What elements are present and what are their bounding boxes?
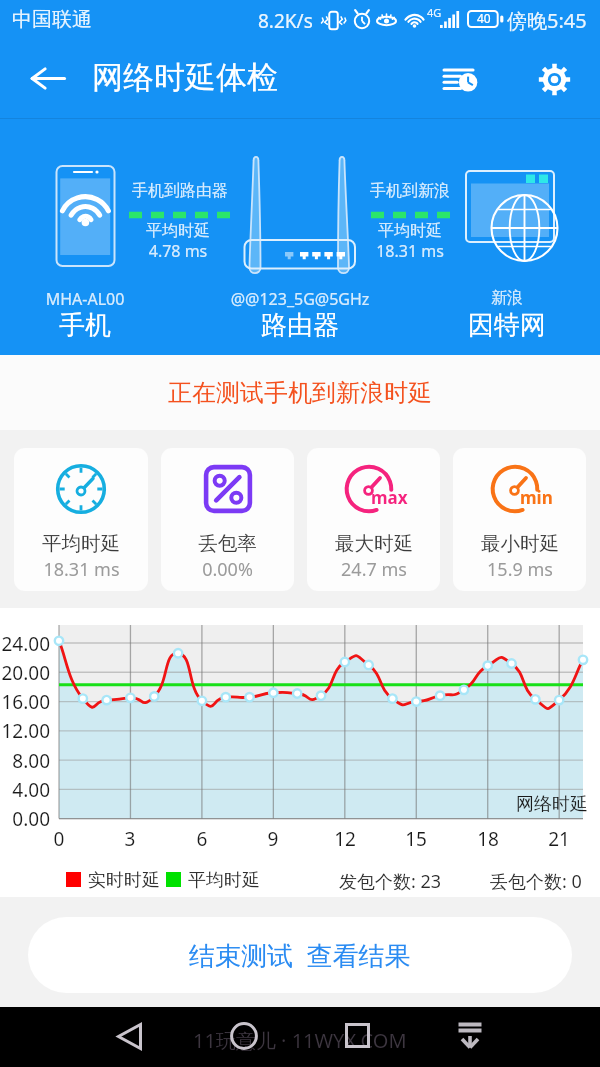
button[interactable]: Settings [524, 49, 584, 109]
staticText: 8.00 [0, 748, 50, 774]
button[interactable]: 丢包率 [161, 448, 294, 591]
staticText: 16.00 [0, 689, 50, 715]
button[interactable]: 平均时延 [14, 448, 148, 591]
staticText: 40 [477, 10, 491, 26]
staticText: 手机到新浪 [290, 181, 530, 201]
staticText: 24.00 [0, 631, 50, 657]
staticText: 4.78 ms [58, 240, 298, 262]
button[interactable]: Back [17, 48, 78, 109]
staticText: 6 [182, 826, 222, 852]
button[interactable]: Back [107, 1014, 151, 1058]
staticText: 9 [253, 826, 293, 852]
staticText: 路由器 [180, 309, 420, 342]
staticText: 18.31 ms [290, 240, 530, 262]
staticText: min [520, 486, 553, 509]
staticText: 丢包率 [198, 531, 257, 556]
staticText: 手机 [0, 309, 205, 342]
staticText: 结束测试 查看结果 [189, 937, 411, 973]
staticText: 15 [396, 826, 436, 852]
staticText: 12 [325, 826, 365, 852]
staticText: 15.9 ms [487, 557, 553, 582]
staticText: 因特网 [387, 309, 600, 342]
staticText: 8.2K/s [258, 8, 313, 34]
button[interactable]: Home [222, 1014, 266, 1058]
staticText: MHA-AL00 [0, 288, 205, 310]
staticText: 平均时延 [290, 221, 530, 241]
staticText: 正在测试手机到新浪时延 [168, 378, 432, 408]
staticText: 18 [468, 826, 508, 852]
staticText: 中国联通 [12, 7, 92, 32]
staticText: 18.31 ms [43, 557, 120, 582]
staticText: 4G [427, 5, 442, 20]
button[interactable]: Hide navigation bar [448, 1013, 492, 1057]
staticText: 21 [539, 826, 579, 852]
staticText: 新浪 [387, 288, 600, 308]
staticText: 实时时延 [88, 869, 160, 892]
staticText: 平均时延 [42, 531, 120, 556]
staticText: 发包个数: 23 [339, 869, 442, 894]
staticText: 网络时延 [516, 793, 588, 816]
staticText: @@123_5G@5GHz [180, 288, 420, 310]
staticText: 0.00 [0, 806, 50, 832]
staticText: 3 [110, 826, 150, 852]
staticText: 0.00% [202, 557, 253, 582]
staticText: 最大时延 [335, 531, 413, 556]
staticText: 4.00 [0, 777, 50, 803]
staticText: 24.7 ms [341, 557, 407, 582]
staticText: 12.00 [0, 718, 50, 744]
staticText: 0 [39, 826, 79, 852]
button[interactable]: max [307, 448, 440, 591]
staticText: 丢包个数: 0 [490, 869, 582, 894]
staticText: 20.00 [0, 660, 50, 686]
staticText: max [371, 486, 408, 509]
button[interactable]: Recents [335, 1013, 379, 1057]
staticText: 手机到路由器 [60, 181, 300, 201]
button[interactable]: min [453, 448, 586, 591]
staticText: 傍晚5:45 [507, 7, 587, 34]
staticText: 网络时延体检 [92, 58, 278, 97]
button[interactable]: 结束测试 查看结果 [28, 917, 572, 993]
staticText: 平均时延 [58, 221, 298, 241]
button[interactable]: History [430, 49, 490, 109]
staticText: 最小时延 [481, 531, 559, 556]
staticText: 平均时延 [188, 869, 260, 892]
staticText: 11玩意儿 · 11WYX.COM [193, 1027, 407, 1054]
